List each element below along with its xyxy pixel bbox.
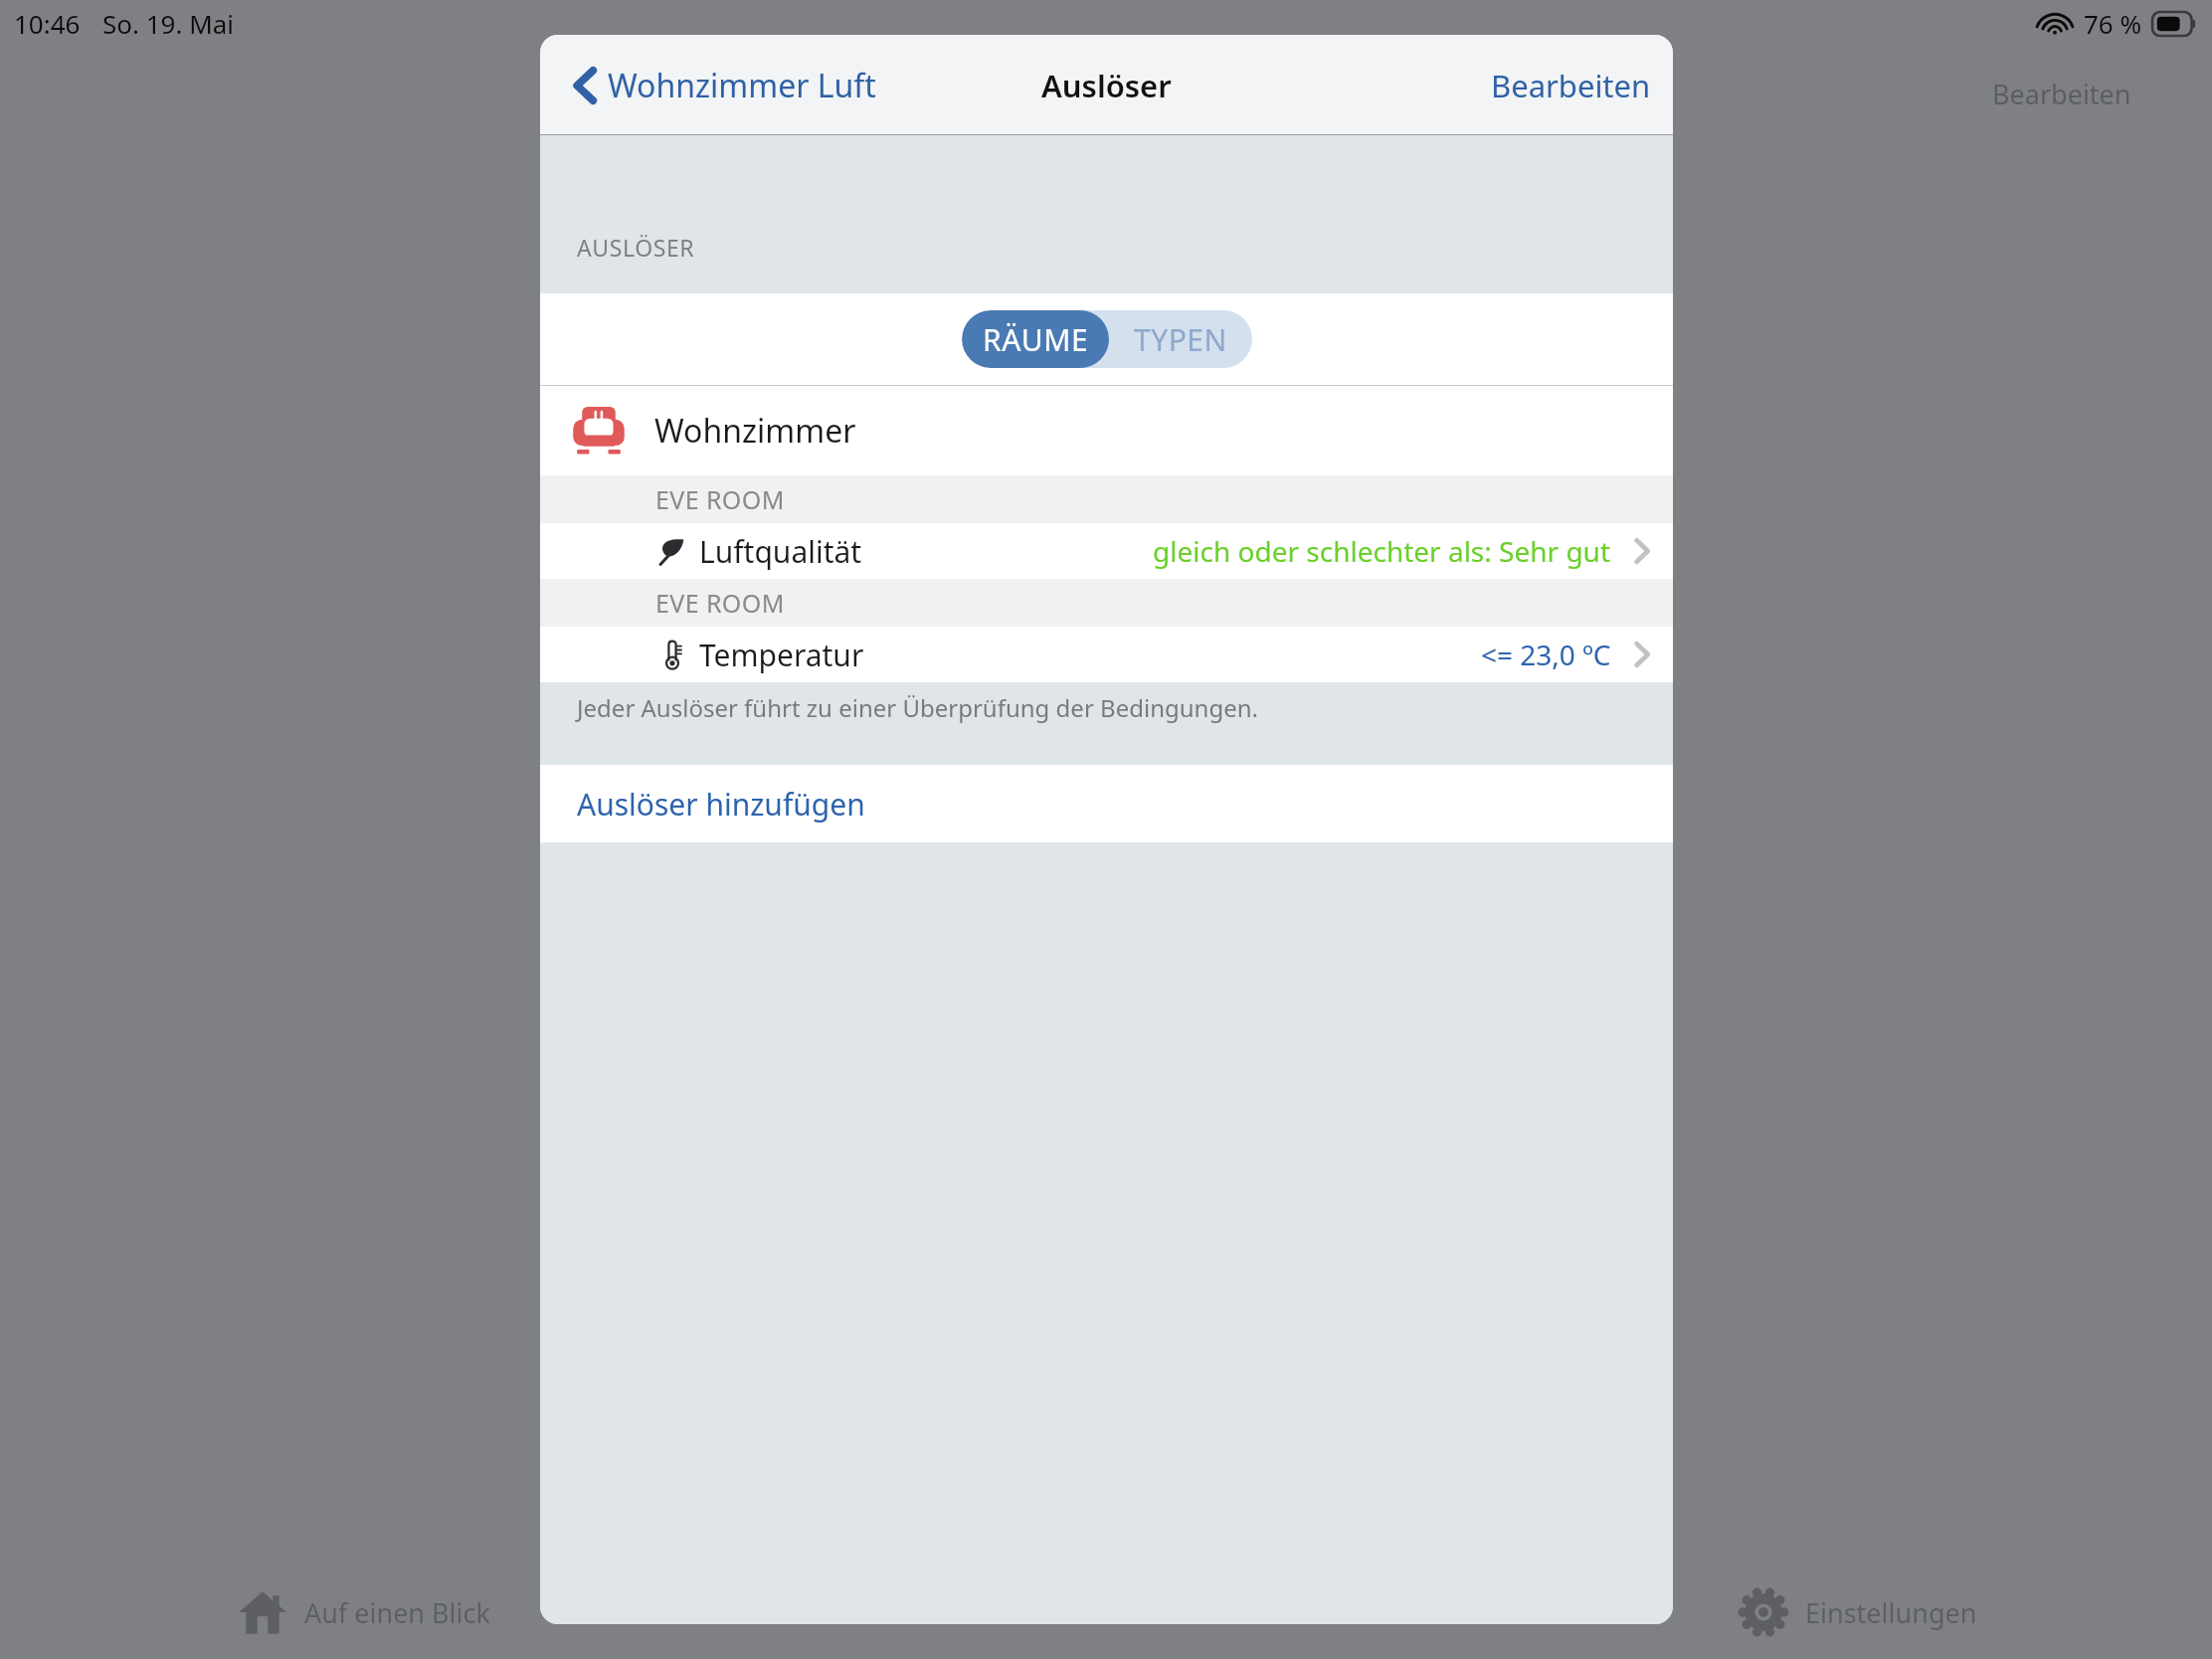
button[interactable]: Wohnzimmer Luft xyxy=(565,35,884,135)
staticText: EVE ROOM xyxy=(655,482,785,516)
button[interactable]: TYPEN xyxy=(1109,310,1252,368)
button[interactable]: RÄUME xyxy=(962,310,1109,368)
button[interactable]: Einstellungen xyxy=(1738,1577,1977,1647)
button[interactable]: Auf einen Blick xyxy=(237,1577,490,1647)
staticText: Auslöser xyxy=(1041,65,1172,106)
staticText: Temperatur xyxy=(699,635,864,675)
staticText: Auf einen Blick xyxy=(304,1594,490,1631)
staticText: Auslöser hinzufügen xyxy=(577,784,865,825)
button[interactable]: Wohnzimmer xyxy=(540,386,1673,475)
button[interactable]: Luftqualität xyxy=(540,523,1673,579)
staticText: So. 19. Mai xyxy=(102,6,235,41)
staticText: AUSLÖSER xyxy=(577,232,695,263)
staticText: Bearbeiten xyxy=(1992,76,2131,112)
staticText: Jeder Auslöser führt zu einer Überprüfun… xyxy=(577,691,1258,724)
staticText: Bearbeiten xyxy=(1491,65,1651,106)
staticText: Wohnzimmer xyxy=(654,409,856,453)
staticText: EVE ROOM xyxy=(655,586,785,620)
staticText: <= 23,0 ºC xyxy=(1481,636,1611,673)
staticText: Einstellungen xyxy=(1805,1594,1977,1631)
staticText: gleich oder schlechter als: Sehr gut xyxy=(1153,532,1611,570)
button[interactable]: Temperatur xyxy=(540,627,1673,682)
staticText: 76 % xyxy=(2084,6,2142,41)
staticText: Luftqualität xyxy=(699,531,862,572)
button[interactable]: Bearbeiten xyxy=(1988,72,2135,116)
staticText: 10:46 xyxy=(14,6,81,41)
staticText: RÄUME xyxy=(983,319,1089,360)
staticText: TYPEN xyxy=(1134,319,1227,360)
button[interactable]: Bearbeiten xyxy=(1469,35,1673,135)
staticText: Wohnzimmer Luft xyxy=(608,64,876,107)
button[interactable]: Auslöser hinzufügen xyxy=(540,765,1673,842)
